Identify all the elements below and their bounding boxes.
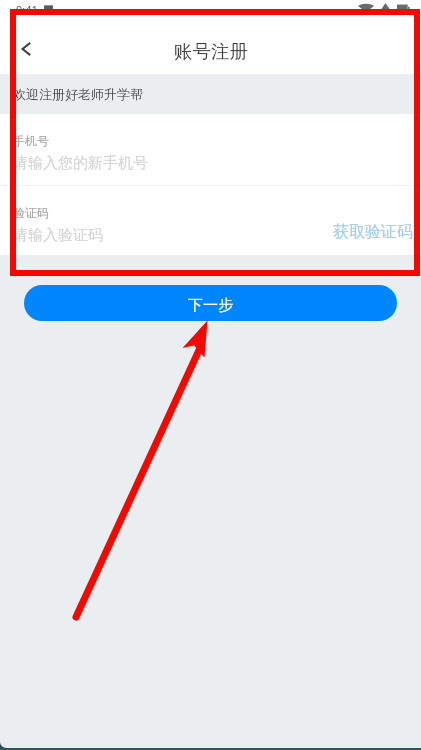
button[interactable]: 获取验证码 (327, 216, 419, 248)
staticText: 账号注册 (174, 40, 248, 63)
staticText: 9:41 (16, 2, 38, 17)
staticText: 验证码 (13, 205, 49, 220)
staticText: 请输入验证码 (13, 226, 103, 245)
staticText: 下一步 (188, 296, 233, 315)
button[interactable]: 手机号 (0, 114, 421, 185)
button[interactable]: Back (0, 26, 48, 74)
staticText: 手机号 (13, 133, 49, 148)
button[interactable]: 验证码 (0, 186, 421, 255)
staticText: 请输入您的新手机号 (13, 154, 148, 173)
button[interactable]: 下一步 (24, 285, 397, 321)
staticText: 欢迎注册好老师升学帮 (13, 86, 143, 102)
staticText: 获取验证码 (333, 222, 413, 242)
